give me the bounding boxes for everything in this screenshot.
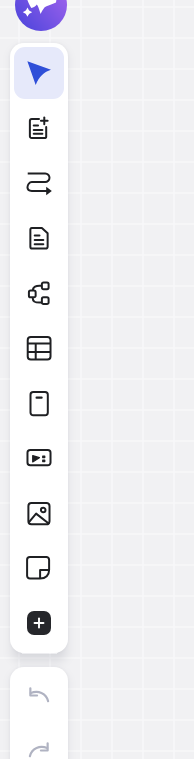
button[interactable]: New note: [10, 100, 68, 155]
button[interactable]: App logo: [15, 0, 67, 31]
button[interactable]: Select tool: [10, 45, 68, 100]
button[interactable]: Media: [10, 430, 68, 485]
button[interactable]: Redo: [10, 722, 68, 759]
button[interactable]: Flow: [10, 155, 68, 210]
button[interactable]: Undo: [10, 667, 68, 722]
button[interactable]: Sticky note: [10, 540, 68, 595]
button[interactable]: Image: [10, 485, 68, 540]
button[interactable]: Nodes: [10, 265, 68, 320]
button[interactable]: Add: [10, 595, 68, 650]
button[interactable]: Document: [10, 210, 68, 265]
button[interactable]: Mobile frame: [10, 375, 68, 430]
button[interactable]: Table: [10, 320, 68, 375]
